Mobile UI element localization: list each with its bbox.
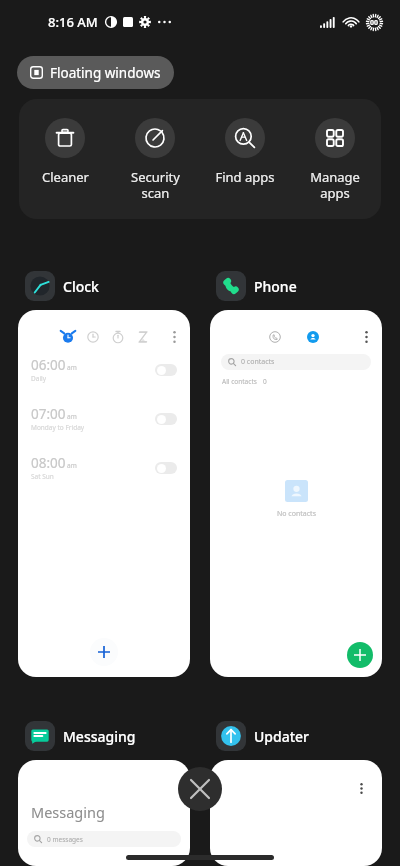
staticText: Messaging <box>63 727 136 746</box>
staticText: Cleaner <box>42 168 89 186</box>
button[interactable]: More options <box>351 778 371 798</box>
staticText: Manage apps <box>310 168 360 201</box>
staticText: All contacts <box>222 377 257 386</box>
staticText: am <box>67 461 77 470</box>
button[interactable]: Manage apps <box>291 99 379 219</box>
button[interactable]: 0 contacts <box>221 354 371 370</box>
staticText: Clock <box>63 277 99 296</box>
staticText: Daily <box>31 374 47 383</box>
button[interactable]: Add alarm <box>90 638 118 666</box>
button[interactable]: Find apps <box>201 99 289 219</box>
staticText: No contacts <box>277 509 316 519</box>
staticText: 07:00 <box>31 405 66 423</box>
staticText: am <box>67 363 77 372</box>
button[interactable]: Floating windows <box>17 56 174 89</box>
button[interactable]: Security scan <box>111 99 199 219</box>
button[interactable]: More options <box>210 760 382 866</box>
staticText: 0 messages <box>47 835 83 844</box>
staticText: 8:16 AM <box>48 13 98 31</box>
button[interactable]: Toggle alarm <box>155 462 177 474</box>
staticText: 08:00 <box>31 454 66 472</box>
button[interactable]: 06:00 <box>18 310 190 677</box>
button[interactable]: Toggle alarm <box>155 413 177 425</box>
staticText: Updater <box>254 727 310 746</box>
button[interactable]: Updater <box>216 721 310 751</box>
button[interactable]: Close all <box>178 767 222 811</box>
staticText: Monday to Friday <box>31 423 85 432</box>
staticText: Security scan <box>131 168 180 201</box>
button[interactable]: Add contact <box>347 642 373 668</box>
staticText: Phone <box>254 277 297 296</box>
button[interactable]: 0 messages <box>27 831 181 847</box>
staticText: Sat Sun <box>31 472 54 481</box>
staticText: Find apps <box>215 168 275 186</box>
staticText: 0 <box>263 377 267 386</box>
button[interactable]: Messaging <box>18 760 190 866</box>
staticText: 0 contacts <box>241 357 275 367</box>
button[interactable]: 0 contacts <box>210 310 382 677</box>
button[interactable]: Clock <box>25 271 99 301</box>
button[interactable]: Cleaner <box>21 99 109 219</box>
button[interactable]: Phone <box>216 271 297 301</box>
staticText: Floating windows <box>50 64 161 82</box>
button[interactable]: Messaging <box>25 721 136 751</box>
staticText: am <box>67 412 77 421</box>
button[interactable]: Toggle alarm <box>155 364 177 376</box>
staticText: 06:00 <box>31 356 66 374</box>
staticText: Messaging <box>31 802 105 822</box>
staticText: 00 <box>370 18 379 28</box>
